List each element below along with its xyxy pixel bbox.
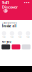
button[interactable]: Tag — [24, 31, 32, 38]
staticText: Discover — [2, 4, 18, 10]
staticText: 9:41 — [2, 0, 9, 5]
staticText: Tag — [2, 36, 5, 38]
staticText: Tag — [18, 36, 21, 38]
staticText: All — [3, 9, 7, 12]
staticText: Tag — [26, 36, 29, 38]
staticText: ••• — [24, 0, 30, 5]
staticText: Categories — [1, 21, 16, 24]
staticText: Browse all — [1, 24, 16, 28]
staticText: Tag — [10, 36, 13, 38]
staticText: For you — [1, 40, 11, 43]
button[interactable]: Tag — [8, 31, 16, 38]
button[interactable]: Tag — [0, 31, 8, 38]
button[interactable]: All — [3, 9, 7, 12]
button[interactable]: Tag — [16, 31, 24, 38]
